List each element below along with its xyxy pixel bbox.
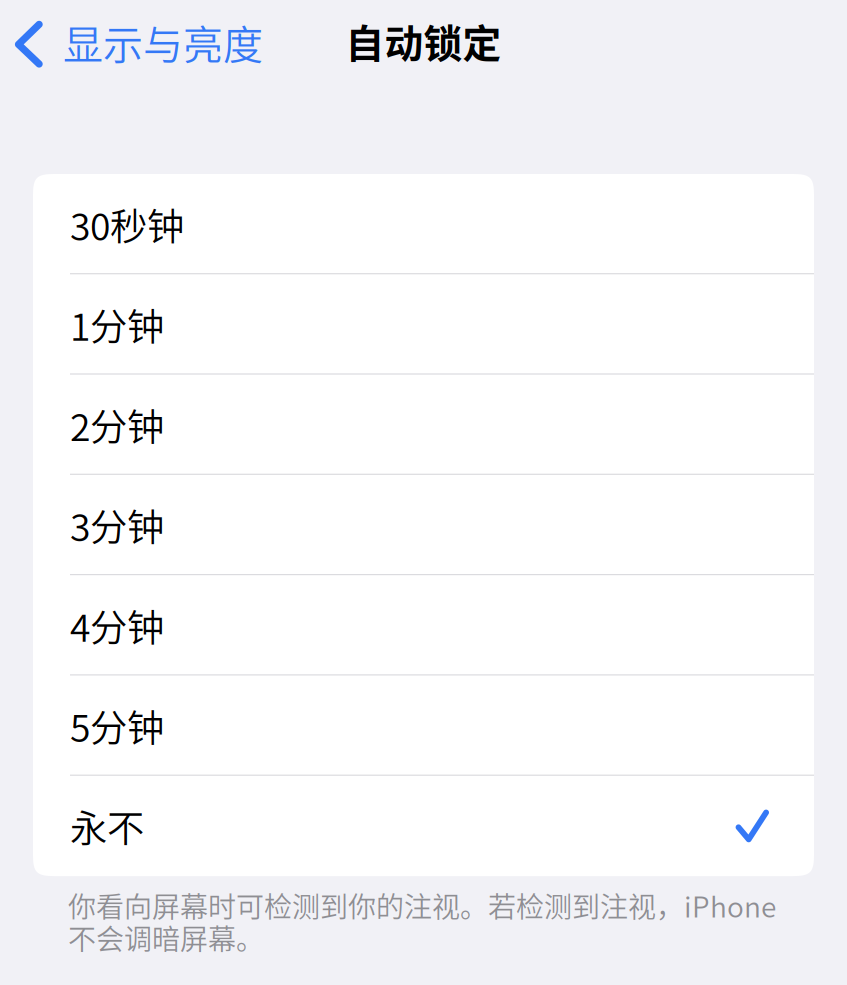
button[interactable]: 显示与亮度	[0, 10, 277, 74]
staticText: 1分钟	[70, 297, 164, 351]
button[interactable]: 永不	[33, 776, 814, 876]
staticText: 30秒钟	[70, 197, 184, 251]
staticText: 2分钟	[70, 398, 164, 452]
button[interactable]: 30秒钟	[33, 174, 814, 274]
staticText: 你看向屏幕时可检测到你的注视。若检测到注视，iPhone	[68, 885, 776, 926]
button[interactable]: 2分钟	[33, 375, 814, 475]
button[interactable]: 4分钟	[33, 575, 814, 675]
staticText: 自动锁定	[345, 13, 501, 69]
button[interactable]: 5分钟	[33, 675, 814, 776]
button[interactable]: 1分钟	[33, 274, 814, 375]
staticText: 4分钟	[70, 598, 164, 652]
staticText: 显示与亮度	[63, 13, 263, 71]
staticText: 5分钟	[70, 699, 164, 753]
button[interactable]: 3分钟	[33, 475, 814, 575]
staticText: 永不	[70, 799, 144, 853]
staticText: 3分钟	[70, 498, 164, 552]
staticText: 不会调暗屏幕。	[68, 917, 264, 958]
